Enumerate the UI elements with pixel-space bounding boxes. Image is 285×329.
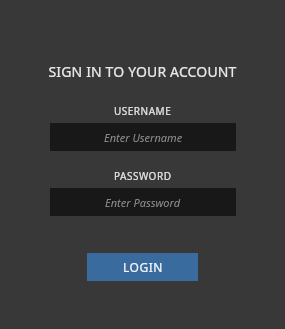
staticText: PASSWORD	[114, 169, 172, 183]
staticText: Enter Password	[105, 195, 181, 210]
button[interactable]: LOGIN	[87, 253, 198, 281]
staticText: USERNAME	[114, 104, 172, 118]
staticText: SIGN IN TO YOUR ACCOUNT	[48, 62, 237, 81]
staticText: LOGIN	[123, 259, 163, 275]
staticText: Enter Username	[104, 130, 183, 145]
button[interactable]: Enter Password	[50, 188, 236, 216]
button[interactable]: Enter Username	[50, 123, 236, 151]
